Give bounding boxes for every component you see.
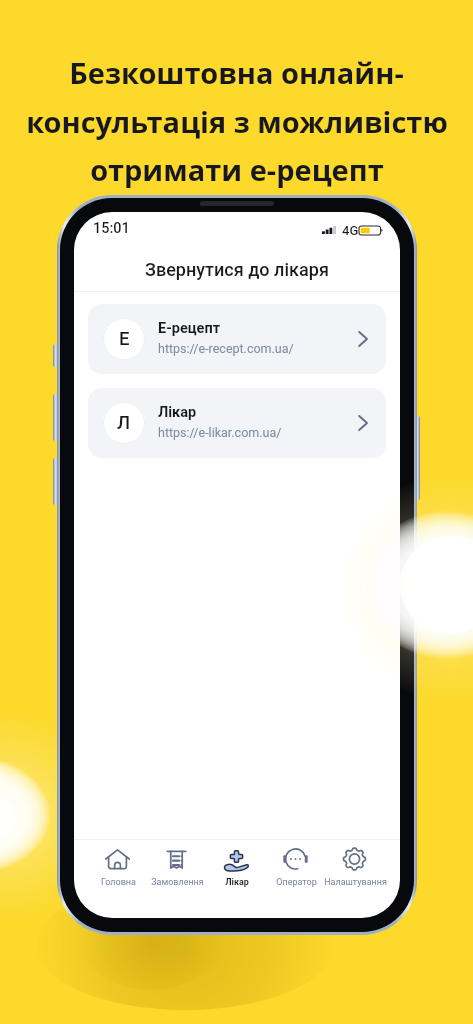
staticText: отримати е-рецепт (90, 150, 384, 189)
staticText: Лікар (158, 404, 197, 421)
staticText: 4G (342, 223, 359, 238)
staticText: Е (119, 328, 130, 350)
staticText: консультація з можливістю (26, 102, 448, 141)
staticText: Оператор (276, 877, 317, 888)
staticText: Е-рецепт (158, 320, 221, 337)
button[interactable]: Е (88, 304, 386, 374)
staticText: Звернутися до лікаря (145, 259, 329, 280)
staticText: Налаштування (324, 877, 387, 888)
staticText: Л (117, 412, 131, 434)
staticText: Замовлення (151, 877, 204, 888)
staticText: Лікар (225, 877, 249, 888)
staticText: 15:01 (93, 220, 130, 237)
button[interactable]: Operator (266, 839, 325, 888)
staticText: https://e-likar.com.ua/ (158, 425, 282, 440)
staticText: Безкоштовна онлайн- (69, 53, 404, 92)
staticText: Головна (101, 877, 136, 888)
staticText: https://e-recept.com.ua/ (158, 341, 294, 356)
button[interactable]: Doctor (207, 839, 266, 888)
button[interactable]: Orders (147, 839, 206, 888)
button[interactable]: Home (88, 839, 147, 888)
button[interactable]: Settings (325, 839, 384, 888)
button[interactable]: Л (88, 388, 386, 458)
